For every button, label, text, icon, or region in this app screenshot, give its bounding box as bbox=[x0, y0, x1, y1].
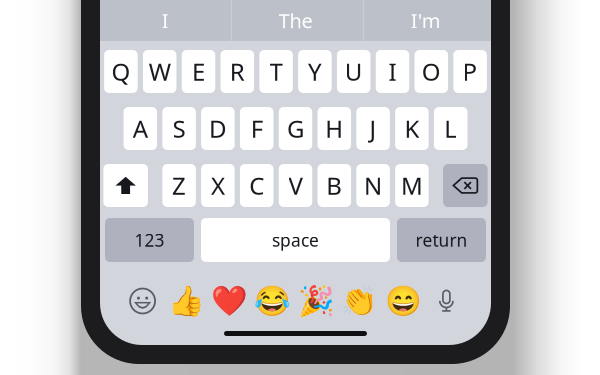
button[interactable]: ❤️ bbox=[208, 285, 251, 317]
button[interactable]: Delete bbox=[443, 164, 488, 207]
button[interactable]: Y bbox=[298, 50, 332, 93]
button[interactable]: Z bbox=[162, 164, 196, 207]
button[interactable]: return bbox=[397, 218, 486, 262]
staticText: return bbox=[415, 228, 467, 251]
staticText: V bbox=[288, 170, 302, 201]
button[interactable]: F bbox=[240, 107, 273, 150]
button[interactable]: 🎉 bbox=[294, 285, 338, 317]
button[interactable]: Q bbox=[104, 50, 138, 93]
staticText: S bbox=[173, 113, 186, 144]
button[interactable]: M bbox=[395, 164, 429, 207]
button[interactable]: space bbox=[201, 218, 390, 262]
staticText: E bbox=[192, 56, 205, 87]
staticText: D bbox=[209, 113, 227, 144]
staticText: K bbox=[404, 113, 419, 144]
button[interactable]: 123 bbox=[105, 218, 194, 262]
staticText: 123 bbox=[134, 228, 164, 251]
button[interactable]: P bbox=[453, 50, 487, 93]
button[interactable]: K bbox=[395, 107, 429, 150]
staticText: 👍 bbox=[167, 284, 204, 318]
button[interactable]: J bbox=[356, 107, 390, 150]
staticText: C bbox=[249, 170, 264, 201]
staticText: I bbox=[162, 7, 169, 34]
staticText: L bbox=[444, 113, 457, 144]
staticText: O bbox=[422, 56, 441, 87]
staticText: I bbox=[388, 56, 396, 87]
staticText: Z bbox=[172, 170, 186, 201]
button[interactable]: D bbox=[201, 107, 235, 150]
staticText: R bbox=[230, 56, 245, 87]
button[interactable]: B bbox=[317, 164, 351, 207]
button[interactable]: 👏 bbox=[338, 285, 381, 317]
staticText: B bbox=[326, 170, 342, 201]
button[interactable]: 😂 bbox=[251, 285, 294, 317]
staticText: space bbox=[272, 228, 319, 251]
button[interactable]: 👍 bbox=[164, 285, 208, 317]
button[interactable]: 😄 bbox=[381, 285, 425, 317]
staticText: U bbox=[345, 56, 363, 87]
staticText: N bbox=[364, 170, 382, 201]
staticText: X bbox=[211, 170, 225, 201]
staticText: I'm bbox=[411, 7, 441, 34]
staticText: F bbox=[251, 113, 263, 144]
button[interactable]: W bbox=[143, 50, 176, 93]
button[interactable]: E bbox=[182, 50, 215, 93]
staticText: Y bbox=[308, 56, 322, 87]
staticText: Q bbox=[111, 56, 130, 87]
button[interactable]: L bbox=[434, 107, 467, 150]
button[interactable]: V bbox=[279, 164, 312, 207]
button[interactable]: N bbox=[356, 164, 390, 207]
staticText: ❤️ bbox=[211, 284, 248, 318]
staticText: M bbox=[401, 170, 423, 201]
staticText: J bbox=[370, 113, 377, 144]
button[interactable]: S bbox=[162, 107, 196, 150]
button[interactable]: I bbox=[100, 0, 230, 41]
button[interactable]: The bbox=[230, 0, 361, 41]
staticText: G bbox=[287, 113, 304, 144]
button[interactable]: G bbox=[279, 107, 312, 150]
staticText: P bbox=[463, 56, 478, 87]
staticText: 👏 bbox=[341, 284, 378, 318]
staticText: H bbox=[325, 113, 343, 144]
button[interactable]: I'm bbox=[361, 0, 491, 41]
button[interactable]: Shift bbox=[103, 164, 148, 207]
button[interactable]: C bbox=[240, 164, 273, 207]
staticText: 😄 bbox=[384, 284, 421, 318]
button[interactable]: Dictation bbox=[425, 285, 468, 317]
button[interactable]: X bbox=[201, 164, 235, 207]
staticText: T bbox=[270, 56, 283, 87]
button[interactable]: I bbox=[376, 50, 409, 93]
staticText: 😂 bbox=[254, 284, 291, 318]
button[interactable]: H bbox=[318, 107, 351, 150]
button[interactable]: A bbox=[124, 107, 157, 150]
staticText: W bbox=[149, 56, 171, 87]
staticText: 🎉 bbox=[298, 284, 335, 318]
button[interactable]: U bbox=[337, 50, 370, 93]
button[interactable]: Emoji keyboard bbox=[121, 285, 164, 317]
button[interactable]: T bbox=[259, 50, 293, 93]
button[interactable]: O bbox=[415, 50, 448, 93]
staticText: The bbox=[278, 7, 312, 34]
button[interactable]: R bbox=[221, 50, 254, 93]
staticText: A bbox=[133, 113, 148, 144]
